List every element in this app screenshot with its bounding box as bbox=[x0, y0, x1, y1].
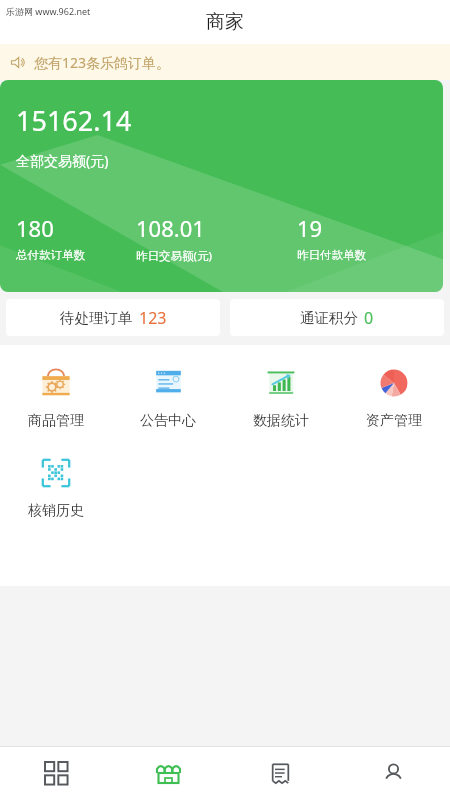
button[interactable]: 您有123条乐鸽订单。 bbox=[0, 44, 450, 80]
button[interactable]: 待处理订单 bbox=[6, 299, 220, 336]
staticText: 待处理订单 bbox=[60, 309, 133, 327]
staticText: 123 bbox=[139, 307, 167, 329]
button[interactable]: 15162.14 bbox=[0, 80, 443, 292]
button[interactable]: 商品管理 bbox=[0, 361, 112, 432]
staticText: 总付款订单数 bbox=[16, 248, 85, 262]
staticText: 资产管理 bbox=[366, 412, 422, 430]
staticText: 昨日付款单数 bbox=[297, 248, 366, 262]
button[interactable]: Orders bbox=[224, 747, 337, 800]
button[interactable]: 公告中心 bbox=[112, 361, 224, 432]
staticText: 商家 bbox=[206, 10, 244, 34]
button[interactable]: 数据统计 bbox=[224, 361, 337, 432]
staticText: 19 bbox=[297, 213, 323, 243]
staticText: 数据统计 bbox=[253, 412, 309, 430]
staticText: 公告中心 bbox=[140, 412, 196, 430]
staticText: 您有123条乐鸽订单。 bbox=[34, 53, 171, 72]
staticText: 15162.14 bbox=[16, 102, 132, 139]
button[interactable]: Grid bbox=[0, 747, 112, 800]
staticText: 0 bbox=[364, 307, 374, 329]
staticText: 乐游网 www.962.net bbox=[6, 5, 91, 17]
staticText: 全部交易额(元) bbox=[16, 151, 109, 170]
staticText: 核销历史 bbox=[28, 502, 84, 520]
staticText: 180 bbox=[16, 213, 54, 243]
button[interactable]: Profile bbox=[337, 747, 450, 800]
staticText: 通证积分 bbox=[300, 309, 358, 327]
button[interactable]: 资产管理 bbox=[337, 361, 450, 432]
staticText: 商品管理 bbox=[28, 412, 84, 430]
staticText: 108.01 bbox=[136, 213, 205, 243]
button[interactable]: 核销历史 bbox=[0, 451, 112, 522]
staticText: 昨日交易额(元) bbox=[136, 248, 212, 264]
button[interactable]: 通证积分 bbox=[230, 299, 444, 336]
button[interactable]: Shop bbox=[112, 747, 224, 800]
